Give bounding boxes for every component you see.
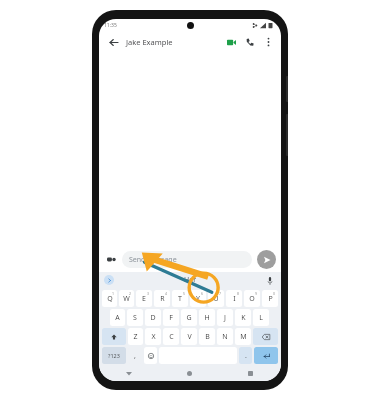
staticText: B [205, 332, 210, 342]
staticText: 3 [147, 291, 150, 296]
button[interactable]: D [145, 309, 161, 326]
staticText: K [241, 313, 246, 323]
staticText: Send message [129, 255, 177, 265]
button[interactable]: A [110, 309, 125, 326]
staticText: C [169, 332, 174, 342]
button[interactable]: R [154, 290, 170, 307]
button[interactable]: L [253, 309, 269, 326]
staticText: 4 [165, 291, 168, 296]
staticText: 7 [219, 291, 222, 296]
button[interactable]: Q [102, 290, 117, 307]
staticText: 9 [255, 291, 258, 296]
staticText: O [249, 294, 255, 304]
button[interactable]: I [226, 290, 242, 307]
button[interactable]: T [172, 290, 188, 307]
button[interactable]: U [208, 290, 224, 307]
button[interactable]: K [235, 309, 251, 326]
button[interactable]: E [136, 290, 152, 307]
staticText: Q [107, 294, 113, 304]
staticText: Z [133, 332, 138, 342]
staticText: 5 [183, 291, 186, 296]
button[interactable]: J [217, 309, 233, 326]
button[interactable]: Recents [220, 366, 281, 381]
staticText: T [178, 294, 182, 304]
staticText: P [268, 294, 273, 304]
button[interactable]: S [127, 309, 143, 326]
button[interactable]: V [181, 328, 197, 345]
button[interactable]: Her [176, 273, 205, 287]
staticText: R [160, 294, 165, 304]
button[interactable]: Call [242, 34, 258, 50]
button[interactable]: , [128, 347, 142, 364]
button[interactable]: M [235, 328, 251, 345]
button[interactable]: Send message [122, 251, 252, 268]
staticText: L [259, 313, 263, 323]
button[interactable]: More options [261, 35, 275, 49]
button[interactable]: Video call [223, 34, 239, 50]
button[interactable]: W [119, 290, 134, 307]
button[interactable]: Attach [104, 252, 118, 266]
button[interactable]: G [181, 309, 197, 326]
staticText: Her [184, 275, 197, 285]
button[interactable]: O [244, 290, 260, 307]
button[interactable]: Voice input [264, 275, 275, 286]
staticText: G [186, 313, 192, 323]
staticText: W [123, 294, 130, 304]
button[interactable]: B [199, 328, 215, 345]
staticText: 6 [201, 291, 204, 296]
button[interactable]: Send [257, 250, 276, 269]
staticText: Jake Example [126, 37, 173, 47]
staticText: F [169, 313, 173, 323]
button[interactable]: Enter [254, 347, 278, 364]
button[interactable]: Emoji [144, 347, 157, 364]
staticText: M [240, 332, 247, 342]
staticText: H [204, 313, 210, 323]
button[interactable]: Y [190, 290, 206, 307]
staticText: S [133, 313, 137, 323]
button[interactable]: Back [105, 34, 121, 50]
button[interactable]: N [217, 328, 233, 345]
button[interactable]: X [145, 328, 161, 345]
button[interactable]: C [163, 328, 179, 345]
staticText: 8 [237, 291, 240, 296]
staticText: A [115, 313, 120, 323]
staticText: E [142, 294, 146, 304]
staticText: U [213, 294, 219, 304]
button[interactable]: H [199, 309, 215, 326]
button[interactable]: Shift [102, 328, 126, 345]
button[interactable]: Z [128, 328, 143, 345]
staticText: J [224, 313, 226, 323]
staticText: 0 [273, 291, 276, 296]
button[interactable]: Back [99, 366, 159, 381]
staticText: 2 [129, 291, 132, 296]
staticText: I [233, 294, 236, 304]
button[interactable]: Expand suggestions [104, 275, 114, 285]
button[interactable]: Home [159, 366, 220, 381]
button[interactable]: Backspace [253, 328, 278, 345]
staticText: . [245, 351, 247, 361]
button[interactable]: P [262, 290, 278, 307]
staticText: X [151, 332, 156, 342]
staticText: 1 [112, 291, 115, 296]
staticText: , [134, 351, 136, 361]
button[interactable]: . [239, 347, 252, 364]
staticText: D [150, 313, 156, 323]
staticText: Y [196, 294, 200, 304]
staticText: V [187, 332, 192, 342]
staticText: N [222, 332, 228, 342]
button[interactable]: F [163, 309, 179, 326]
staticText: ?123 [108, 352, 120, 359]
button[interactable]: ?123 [102, 347, 126, 364]
staticText: 11:35 [104, 22, 117, 29]
